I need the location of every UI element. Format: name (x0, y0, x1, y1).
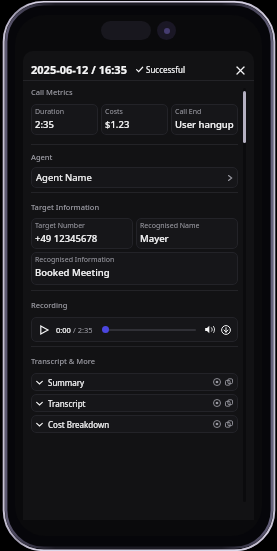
button[interactable]: Copy (224, 398, 234, 408)
staticText: Call End (175, 107, 202, 117)
staticText: Costs (105, 107, 123, 117)
button[interactable]: Download (212, 398, 222, 408)
staticText: Cost Breakdown (48, 419, 110, 430)
button[interactable]: Download (212, 419, 222, 429)
staticText: Transcript & More (31, 356, 96, 366)
button[interactable]: Play (38, 324, 50, 336)
button[interactable]: Close (232, 62, 248, 78)
staticText: Recording (31, 300, 68, 310)
staticText: Recognised Information (35, 255, 115, 265)
staticText: 2:35 (35, 118, 54, 131)
staticText: Agent Name (36, 171, 92, 184)
button[interactable]: Download (212, 377, 222, 387)
staticText: / 2:35 (73, 325, 93, 335)
staticText: Duration (35, 107, 65, 117)
button[interactable]: Cost Breakdown (31, 415, 238, 433)
staticText: Target Information (31, 202, 100, 212)
staticText: Successful (146, 64, 185, 75)
staticText: Target Number (35, 221, 86, 231)
button[interactable]: Copy (224, 419, 234, 429)
staticText: +49 12345678 (35, 232, 98, 245)
button[interactable]: Copy (224, 377, 234, 387)
staticText: Agent (31, 152, 53, 162)
staticText: Recognised Name (140, 221, 200, 231)
button[interactable]: Summary (31, 373, 238, 391)
staticText: Mayer (140, 232, 169, 245)
staticText: Transcript (48, 398, 86, 409)
button[interactable]: Download (220, 324, 232, 336)
button[interactable]: Agent Name (31, 167, 238, 188)
staticText: 0:00 (56, 325, 71, 335)
button[interactable]: Transcript (31, 394, 238, 412)
staticText: User hangup (175, 118, 234, 131)
staticText: Booked Meeting (35, 266, 110, 279)
staticText: Call Metrics (31, 87, 73, 97)
staticText: 2025-06-12 / 16:35 (31, 62, 127, 77)
staticText: Summary (48, 377, 85, 388)
staticText: $1.23 (105, 118, 130, 131)
button[interactable]: Volume (204, 324, 215, 335)
